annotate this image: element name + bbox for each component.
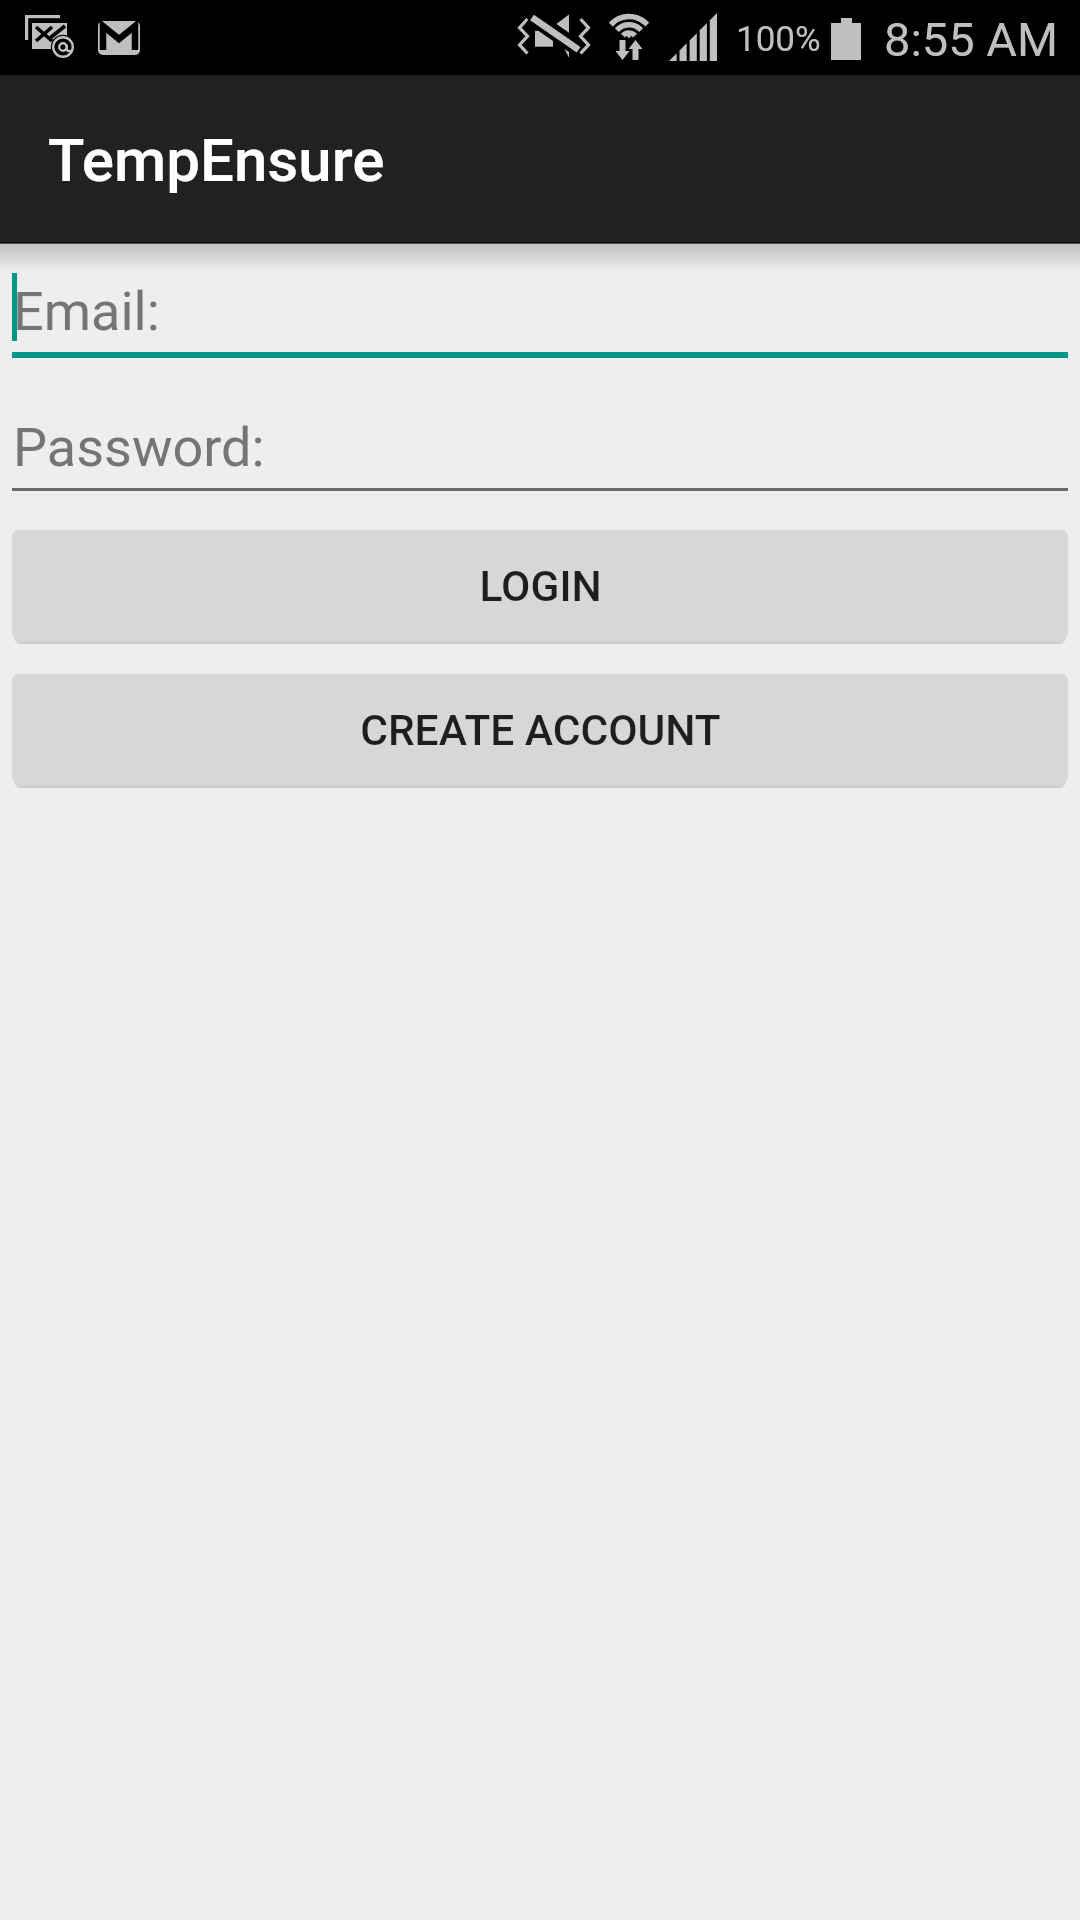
staticText: CREATE ACCOUNT bbox=[360, 706, 721, 756]
button[interactable]: Email input field bbox=[0, 268, 1080, 360]
staticText: Email: bbox=[13, 280, 160, 343]
button[interactable]: CREATE ACCOUNT bbox=[12, 674, 1068, 782]
staticText: LOGIN bbox=[479, 562, 602, 612]
staticText: Password: bbox=[13, 416, 265, 479]
button[interactable]: LOGIN bbox=[12, 530, 1068, 638]
staticText: 100% bbox=[736, 19, 821, 60]
staticText: 8:55 AM bbox=[884, 12, 1058, 67]
button[interactable]: Password input field bbox=[0, 404, 1080, 496]
other: Status bar bbox=[0, 0, 1080, 75]
staticText: TempEnsure bbox=[48, 125, 385, 195]
